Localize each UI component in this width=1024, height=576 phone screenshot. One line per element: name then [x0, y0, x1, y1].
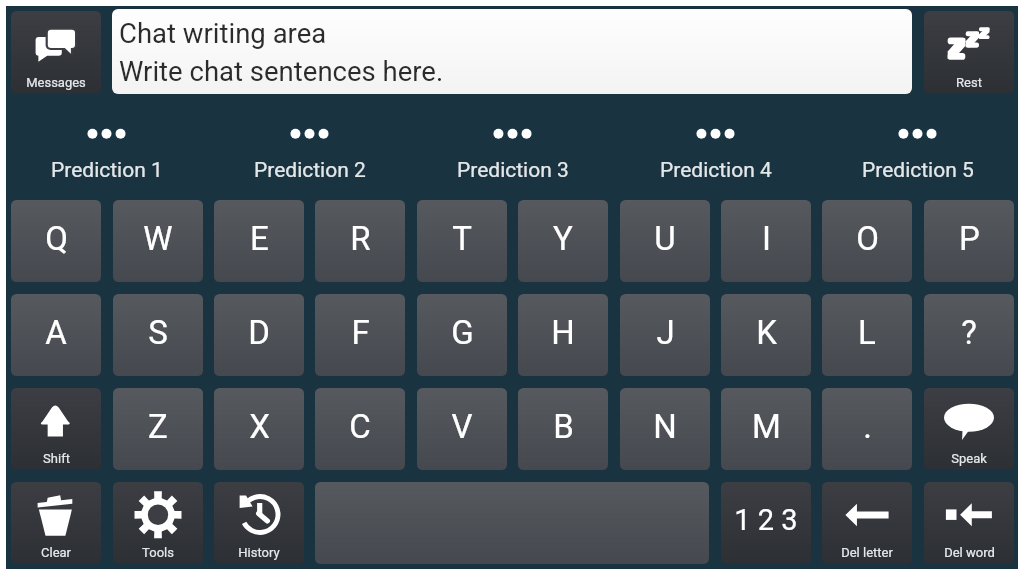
staticText: Shift [43, 451, 70, 466]
staticText: Prediction 4 [660, 158, 772, 183]
button[interactable]: G [417, 294, 507, 376]
button[interactable]: R [315, 200, 405, 282]
staticText: P [959, 219, 980, 258]
button[interactable]: C [315, 388, 405, 470]
staticText: S [148, 313, 168, 352]
button[interactable]: K [721, 294, 811, 376]
staticText: Z [148, 407, 168, 446]
staticText: T [452, 219, 472, 258]
staticText: K [756, 313, 777, 352]
button[interactable]: History [214, 482, 304, 564]
staticText: W [143, 219, 173, 258]
staticText: D [248, 313, 270, 352]
button[interactable]: . [822, 388, 912, 470]
staticText: B [553, 407, 574, 446]
staticText: U [654, 219, 676, 258]
button[interactable]: Numbers [721, 482, 811, 564]
staticText: Write chat sentences here. [119, 55, 444, 87]
staticText: 1 2 3 [734, 503, 798, 537]
staticText: R [350, 219, 371, 258]
button[interactable]: Prediction 4 [620, 106, 811, 192]
button[interactable]: Shift [11, 388, 101, 470]
staticText: E [250, 219, 269, 258]
staticText: ? [961, 313, 977, 352]
button[interactable]: E [214, 200, 304, 282]
staticText: Del word [944, 545, 995, 560]
staticText: N [653, 407, 677, 446]
button[interactable]: D [214, 294, 304, 376]
button[interactable]: P [924, 200, 1014, 282]
button[interactable]: L [822, 294, 912, 376]
button[interactable]: M [721, 388, 811, 470]
button[interactable]: I [721, 200, 811, 282]
staticText: A [45, 313, 67, 352]
button[interactable]: Prediction 2 [214, 106, 405, 192]
button[interactable]: Tools [113, 482, 203, 564]
button[interactable]: Rest [924, 11, 1014, 94]
button[interactable]: W [113, 200, 203, 282]
button[interactable]: U [620, 200, 710, 282]
staticText: H [551, 313, 575, 352]
button[interactable]: T [417, 200, 507, 282]
staticText: Prediction 1 [51, 158, 163, 183]
staticText: Q [45, 219, 68, 258]
button[interactable]: B [518, 388, 608, 470]
button[interactable]: Space [315, 482, 709, 564]
button[interactable]: Chat writing area [112, 9, 912, 94]
button[interactable]: Delete word [924, 482, 1014, 564]
button[interactable]: V [417, 388, 507, 470]
staticText: V [451, 407, 473, 446]
button[interactable]: Delete letter [822, 482, 912, 564]
button[interactable]: Messages [11, 11, 101, 94]
staticText: Del letter [841, 545, 893, 560]
button[interactable]: Z [113, 388, 203, 470]
button[interactable]: O [822, 200, 912, 282]
button[interactable]: Speak [924, 388, 1014, 470]
staticText: Prediction 5 [862, 158, 974, 183]
button[interactable]: ? [924, 294, 1014, 376]
staticText: Tools [142, 545, 174, 560]
button[interactable]: F [315, 294, 405, 376]
button[interactable]: A [11, 294, 101, 376]
staticText: I [762, 219, 771, 258]
staticText: J [656, 313, 675, 352]
staticText: Chat writing area [119, 17, 327, 49]
staticText: L [858, 313, 876, 352]
button[interactable]: Prediction 1 [11, 106, 202, 192]
staticText: Y [553, 219, 573, 258]
staticText: History [238, 545, 280, 560]
button[interactable]: N [620, 388, 710, 470]
button[interactable]: Clear [11, 482, 101, 564]
staticText: Clear [41, 545, 71, 560]
staticText: M [752, 407, 781, 446]
staticText: F [351, 313, 370, 352]
button[interactable]: Prediction 5 [822, 106, 1013, 192]
button[interactable]: J [620, 294, 710, 376]
button[interactable]: X [214, 388, 304, 470]
button[interactable]: H [518, 294, 608, 376]
button[interactable]: Q [11, 200, 101, 282]
staticText: Messages [26, 75, 86, 90]
staticText: Speak [951, 451, 987, 466]
staticText: O [856, 219, 879, 258]
staticText: X [249, 407, 270, 446]
staticText: Prediction 2 [254, 158, 366, 183]
staticText: C [349, 407, 371, 446]
button[interactable]: Prediction 3 [417, 106, 608, 192]
staticText: Rest [956, 75, 982, 90]
button[interactable]: S [113, 294, 203, 376]
staticText: . [863, 407, 872, 446]
staticText: Prediction 3 [457, 158, 569, 183]
staticText: G [451, 313, 474, 352]
button[interactable]: Y [518, 200, 608, 282]
